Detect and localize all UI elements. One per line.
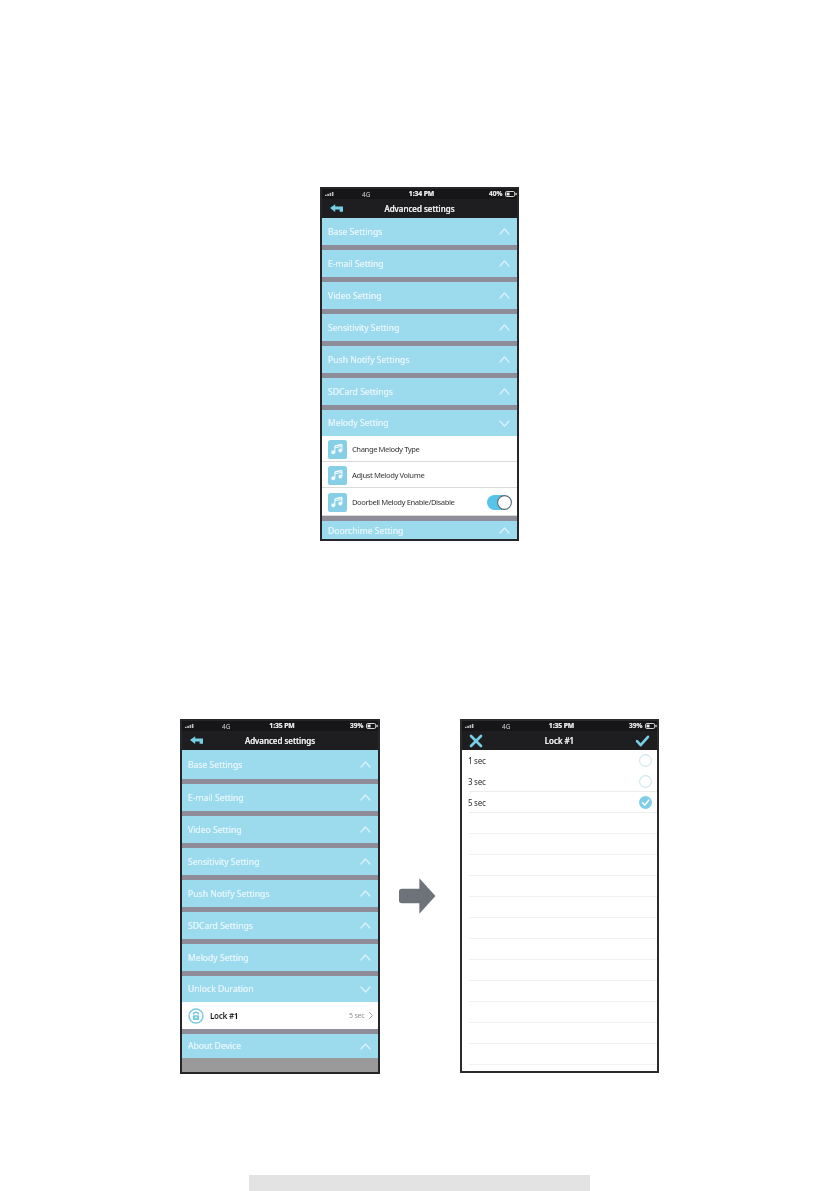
staticText: Video Setting [188, 824, 242, 836]
staticText: 39% [350, 721, 364, 730]
other: Next step [399, 877, 436, 915]
button[interactable]: About Device [181, 1034, 379, 1058]
button[interactable]: Base Settings [181, 750, 379, 779]
staticText: Sensitivity Setting [188, 856, 260, 868]
button[interactable]: Sensitivity Setting [321, 314, 518, 341]
staticText: 5 sec [349, 1011, 365, 1021]
button[interactable]: Melody Setting [321, 410, 518, 436]
button[interactable]: Video Setting [181, 816, 379, 843]
staticText: 4G [502, 722, 511, 731]
button[interactable]: Change Melody Type [321, 436, 518, 462]
staticText: 5 sec [468, 797, 486, 808]
other: Confirm [636, 736, 649, 746]
staticText: Melody Setting [328, 417, 389, 429]
staticText: Advanced settings [321, 203, 518, 214]
button[interactable]: Base Settings [321, 218, 518, 245]
button[interactable]: E-mail Setting [321, 250, 518, 277]
button[interactable]: Doorchime Setting [321, 521, 518, 540]
staticText: Lock #1 [210, 1010, 238, 1021]
button[interactable]: Back [190, 731, 203, 750]
button[interactable]: Cancel [470, 731, 482, 750]
button[interactable]: SDCard Settings [321, 378, 518, 405]
staticText: 4G [222, 722, 231, 731]
button[interactable]: 1 sec [461, 750, 658, 771]
staticText: Lock #1 [461, 735, 658, 746]
other: Back [330, 204, 343, 214]
staticText: Base Settings [328, 226, 383, 238]
staticText: 3 sec [468, 776, 486, 787]
staticText: Unlock Duration [188, 983, 254, 995]
staticText: SDCard Settings [328, 386, 393, 398]
button[interactable]: SDCard Settings [181, 912, 379, 939]
staticText: 1:34 PM [323, 189, 520, 198]
button[interactable]: Push Notify Settings [181, 880, 379, 907]
staticText: Push Notify Settings [188, 888, 270, 900]
staticText: Adjust Melody Volume [352, 470, 425, 480]
button[interactable]: E-mail Setting [181, 784, 379, 811]
button[interactable]: Confirm [636, 731, 649, 750]
other: Back [190, 736, 203, 746]
staticText: 4G [362, 190, 371, 199]
button[interactable]: Unlock Duration [181, 976, 379, 1002]
staticText: Advanced settings [181, 735, 379, 746]
button[interactable]: 5 sec [461, 792, 658, 813]
button[interactable]: Doorbell Melody Enable/Disable [321, 488, 518, 516]
staticText: E-mail Setting [188, 792, 244, 804]
button[interactable]: Adjust Melody Volume [321, 462, 518, 488]
button[interactable]: 3 sec [461, 771, 658, 792]
staticText: Video Setting [328, 290, 382, 302]
staticText: E-mail Setting [328, 258, 384, 270]
button[interactable]: Push Notify Settings [321, 346, 518, 373]
staticText: 1:35 PM [183, 721, 381, 730]
staticText: Change Melody Type [352, 444, 420, 454]
staticText: SDCard Settings [188, 920, 253, 932]
button[interactable]: Doorbell melody toggle [487, 495, 512, 510]
staticText: Doorbell Melody Enable/Disable [352, 497, 455, 507]
button[interactable]: Melody Setting [181, 944, 379, 971]
staticText: 39% [629, 721, 643, 730]
button[interactable]: Back [330, 199, 343, 218]
staticText: Melody Setting [188, 952, 249, 964]
button[interactable]: Sensitivity Setting [181, 848, 379, 875]
staticText: About Device [188, 1040, 242, 1052]
staticText: Doorchime Setting [328, 525, 404, 537]
staticText: 1 sec [468, 755, 486, 766]
button[interactable]: Lock #1 [181, 1002, 379, 1029]
staticText: Base Settings [188, 759, 243, 771]
other: Cancel [470, 735, 482, 747]
staticText: 40% [489, 189, 503, 198]
staticText: Sensitivity Setting [328, 322, 400, 334]
staticText: 1:35 PM [463, 721, 660, 730]
staticText: Push Notify Settings [328, 354, 410, 366]
button[interactable]: Video Setting [321, 282, 518, 309]
